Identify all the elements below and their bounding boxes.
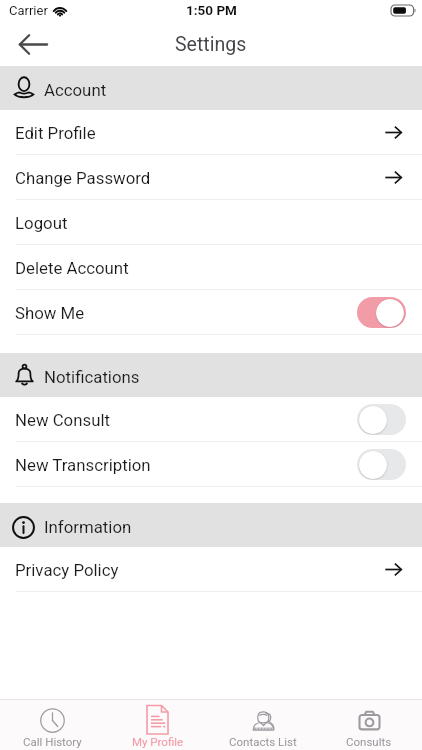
- staticText: Notifications: [44, 367, 140, 387]
- staticText: Change Password: [15, 168, 385, 188]
- button[interactable]: [357, 449, 406, 480]
- button[interactable]: [357, 404, 406, 435]
- staticText: Settings: [175, 33, 247, 56]
- staticText: Call History: [23, 735, 82, 748]
- button[interactable]: [357, 297, 406, 328]
- staticText: Delete Account: [15, 258, 406, 278]
- button[interactable]: Consults: [316, 700, 422, 750]
- button[interactable]: Change Password: [0, 155, 422, 199]
- button[interactable]: Show Me: [0, 290, 422, 334]
- button[interactable]: Privacy Policy: [0, 547, 422, 591]
- button[interactable]: Contacts List: [210, 700, 316, 750]
- staticText: Privacy Policy: [15, 560, 385, 580]
- staticText: Consults: [346, 735, 392, 748]
- button[interactable]: New Transcription: [0, 442, 422, 486]
- button[interactable]: Edit Profile: [0, 110, 422, 154]
- staticText: Show Me: [15, 303, 357, 323]
- button[interactable]: New Consult: [0, 397, 422, 441]
- button[interactable]: Delete Account: [0, 245, 422, 289]
- staticText: 1:50 PM: [186, 2, 237, 18]
- button[interactable]: Logout: [0, 200, 422, 244]
- staticText: New Transcription: [15, 455, 357, 475]
- staticText: Information: [44, 517, 132, 537]
- staticText: Logout: [15, 213, 406, 233]
- staticText: Carrier: [9, 3, 48, 18]
- staticText: Contacts List: [229, 735, 297, 748]
- button[interactable]: My Profile: [105, 700, 210, 750]
- button[interactable]: Call History: [0, 700, 105, 750]
- staticText: Account: [44, 80, 107, 100]
- staticText: My Profile: [132, 735, 184, 748]
- staticText: New Consult: [15, 410, 357, 430]
- button[interactable]: Back: [4, 22, 48, 66]
- staticText: Edit Profile: [15, 123, 385, 143]
